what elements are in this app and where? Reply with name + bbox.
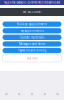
button[interactable]: Payments and billing <box>2 48 61 53</box>
button[interactable]: Bookmarks <box>38 88 51 100</box>
staticText: Update my details <box>20 36 44 39</box>
button[interactable]: Back <box>0 88 13 100</box>
staticText: Payments and billing <box>17 49 46 52</box>
button[interactable]: Forward <box>13 88 26 100</box>
staticText: My appointments <box>20 29 43 32</box>
staticText: MY ACCOUNT <box>23 10 41 14</box>
staticText: Messages and alerts <box>19 42 45 46</box>
staticText: Log out <box>26 56 37 60</box>
button[interactable]: Messages and alerts <box>2 41 61 47</box>
button[interactable]: Log out <box>2 54 61 62</box>
button[interactable]: Tabs <box>51 88 64 100</box>
button[interactable]: Share <box>26 88 38 100</box>
staticText: my-portal.example.com/members/dashboard <box>3 1 60 4</box>
button[interactable]: My appointments <box>2 28 61 33</box>
button[interactable]: Update my details <box>2 35 61 40</box>
staticText: Book an appointment <box>17 22 47 26</box>
button[interactable]: Book an appointment <box>2 21 61 27</box>
